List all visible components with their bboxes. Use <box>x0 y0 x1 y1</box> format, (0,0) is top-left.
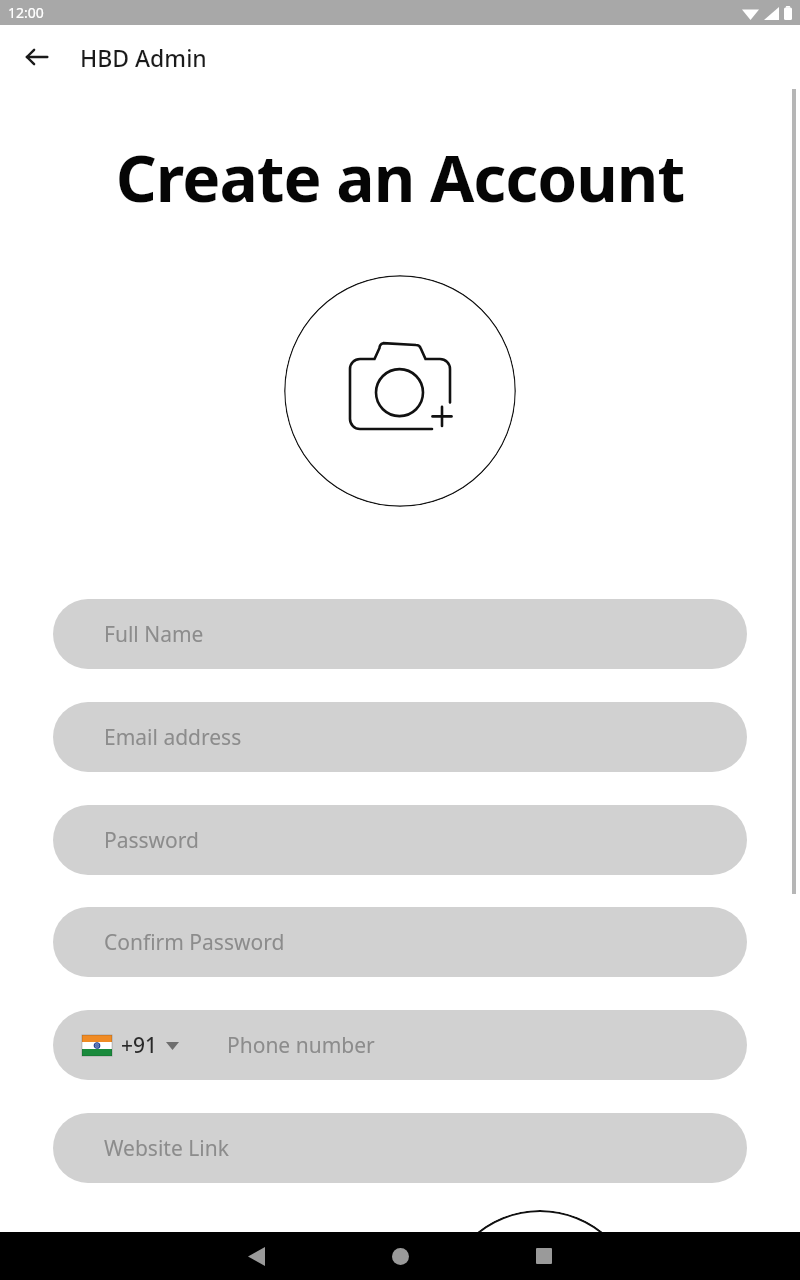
button[interactable]: Email address <box>53 702 747 772</box>
button[interactable]: Password <box>53 805 747 875</box>
staticText: HBD Admin <box>80 42 207 73</box>
button[interactable]: Confirm Password <box>53 907 747 977</box>
button[interactable]: Full Name <box>53 599 747 669</box>
staticText: Website Link <box>104 1134 229 1163</box>
button[interactable]: Phone number <box>227 1010 747 1080</box>
staticText: +91 <box>121 1031 158 1060</box>
staticText: Confirm Password <box>104 928 285 957</box>
button[interactable]: Add profile photo <box>284 275 516 507</box>
button[interactable]: Website Link <box>53 1113 747 1183</box>
button[interactable]: Recent apps <box>520 1232 568 1280</box>
staticText: Email address <box>104 723 242 752</box>
staticText: Phone number <box>227 1031 375 1060</box>
button[interactable]: Select country code <box>76 1025 185 1066</box>
button[interactable]: Home <box>376 1232 424 1280</box>
button[interactable]: Back <box>232 1232 280 1280</box>
staticText: Create an Account <box>0 134 800 221</box>
staticText: 12:00 <box>8 3 44 22</box>
button[interactable]: Back <box>12 32 62 82</box>
staticText: Full Name <box>104 620 204 649</box>
staticText: Password <box>104 826 199 855</box>
button[interactable]: Submit <box>440 1210 640 1280</box>
